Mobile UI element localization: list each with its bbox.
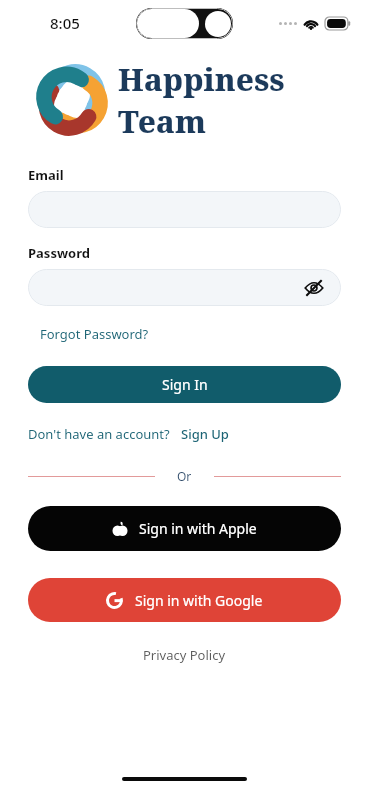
staticText: Email: [28, 166, 64, 184]
button[interactable]: [28, 191, 341, 228]
staticText: Team: [118, 100, 206, 142]
button[interactable]: Sign Up: [179, 423, 231, 445]
staticText: Happiness: [118, 58, 285, 100]
button[interactable]: Privacy Policy: [139, 643, 230, 667]
staticText: Sign in with Apple: [139, 519, 257, 538]
button[interactable]: Show password: [28, 269, 341, 306]
staticText: Sign in with Google: [135, 591, 263, 610]
staticText: Or: [177, 468, 192, 484]
button[interactable]: Sign in with Apple: [28, 506, 341, 551]
staticText: Forgot Password?: [40, 325, 149, 343]
staticText: Sign In: [162, 375, 208, 394]
staticText: Password: [28, 244, 90, 262]
staticText: Privacy Policy: [143, 646, 226, 664]
button[interactable]: Sign In: [28, 366, 341, 403]
button[interactable]: Forgot Password?: [38, 323, 151, 345]
staticText: Don't have an account?: [28, 425, 170, 443]
staticText: 8:05: [50, 13, 80, 33]
staticText: Sign Up: [181, 425, 229, 443]
button[interactable]: Show password: [303, 277, 325, 299]
button[interactable]: Sign in with Google: [28, 578, 341, 622]
